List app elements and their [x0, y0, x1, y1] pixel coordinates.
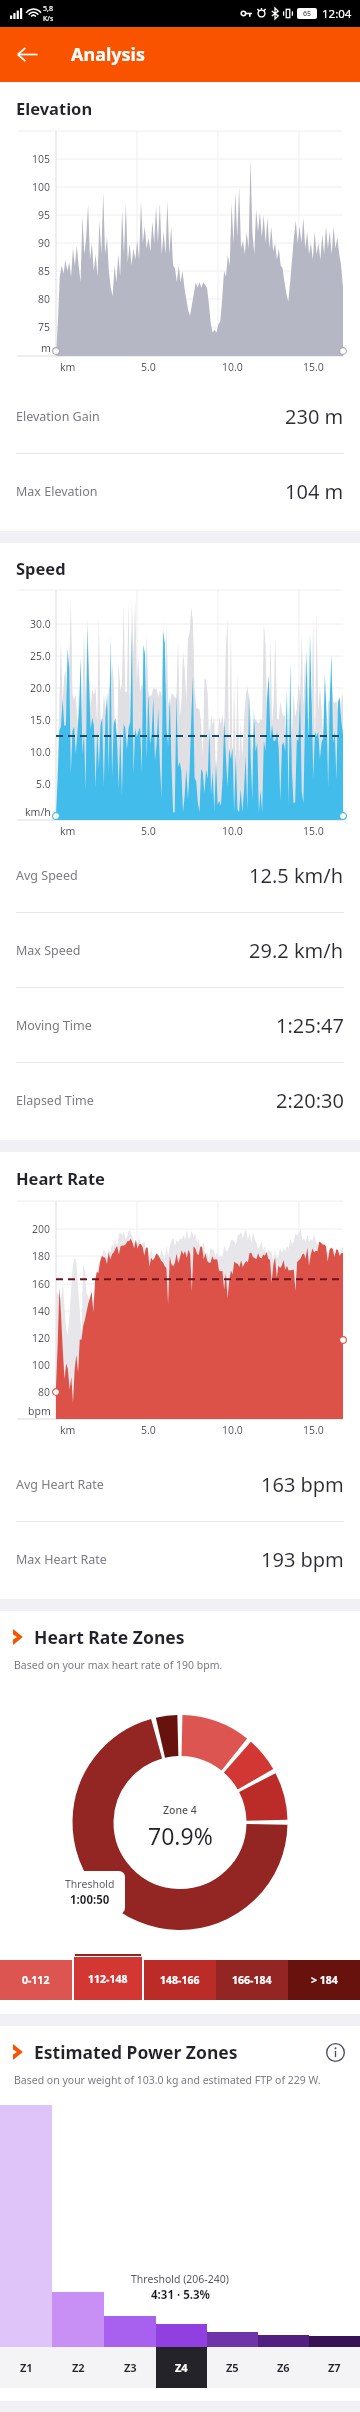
staticText: Heart Rate	[16, 1167, 105, 1189]
staticText: 200	[32, 1222, 51, 1236]
staticText: Estimated Power Zones	[34, 2040, 238, 2064]
button[interactable]: Elevation Gain	[0, 379, 360, 454]
staticText: 30.0	[30, 617, 51, 631]
staticText: Elapsed Time	[16, 1092, 94, 1109]
staticText: 2:20:30	[276, 1087, 344, 1114]
staticText: 1:00:50	[70, 1892, 110, 1908]
staticText: bpm	[28, 1404, 51, 1418]
staticText: 105	[32, 152, 51, 166]
staticText: 148-166	[160, 1973, 200, 1987]
button[interactable]: 200	[0, 1201, 360, 1447]
staticText: 85	[38, 264, 51, 278]
button[interactable]: Z5	[207, 2347, 258, 2388]
staticText: 80	[38, 1385, 51, 1399]
staticText: 90	[38, 236, 51, 250]
staticText: km	[60, 824, 76, 838]
staticText: 10.0	[222, 360, 243, 374]
staticText: 75	[38, 320, 51, 334]
button[interactable]: Z4	[156, 2347, 207, 2388]
staticText: 180	[32, 1249, 51, 1263]
staticText: Z6	[277, 2360, 290, 2375]
staticText: 160	[32, 1277, 51, 1291]
button[interactable]: Max Heart Rate	[0, 1522, 360, 1597]
button[interactable]: > 184	[288, 1960, 360, 2000]
button[interactable]: 0-112	[0, 1960, 72, 2000]
button[interactable]: Avg Heart Rate	[0, 1447, 360, 1522]
staticText: 5,8	[43, 4, 53, 14]
staticText: 120	[32, 1331, 51, 1345]
button[interactable]: Elapsed Time	[0, 1063, 360, 1138]
staticText: Z2	[72, 2360, 85, 2375]
button[interactable]: Moving Time	[0, 988, 360, 1063]
staticText: km/h	[25, 805, 51, 819]
staticText: Max Elevation	[16, 483, 98, 500]
staticText: 0-112	[22, 1973, 50, 1987]
staticText: 65	[303, 9, 312, 19]
staticText: 5.0	[36, 777, 51, 791]
staticText: 104 m	[285, 478, 344, 505]
button[interactable]: Back	[0, 27, 55, 82]
staticText: Z3	[124, 2360, 137, 2375]
staticText: 100	[32, 1358, 51, 1372]
staticText: 15.0	[303, 824, 324, 838]
button[interactable]: Info	[323, 2040, 347, 2064]
staticText: Z4	[175, 2360, 188, 2375]
staticText: 5.0	[141, 360, 156, 374]
staticText: 20.0	[30, 681, 51, 695]
staticText: 95	[38, 208, 51, 222]
staticText: km	[60, 1423, 76, 1437]
staticText: Avg Heart Rate	[16, 1476, 104, 1493]
staticText: 193 bpm	[261, 1546, 344, 1573]
staticText: 25.0	[30, 649, 51, 663]
staticText: Based on your max heart rate of 190 bpm.	[14, 1658, 223, 1672]
staticText: Analysis	[71, 42, 146, 67]
staticText: K/s	[43, 14, 54, 24]
staticText: 15.0	[303, 360, 324, 374]
staticText: Threshold (206-240)	[131, 2272, 229, 2286]
staticText: 10.0	[30, 745, 51, 759]
staticText: Zone 4	[163, 1803, 197, 1817]
staticText: 100	[32, 180, 51, 194]
staticText: 166-184	[232, 1973, 272, 1987]
staticText: 80	[38, 292, 51, 306]
button[interactable]: Z1	[0, 2347, 52, 2388]
button[interactable]: Avg Speed	[0, 838, 360, 913]
button[interactable]: Z3	[104, 2347, 156, 2388]
button[interactable]: Z2	[52, 2347, 104, 2388]
staticText: 29.2 km/h	[249, 937, 344, 964]
staticText: > 184	[311, 1973, 338, 1987]
staticText: 4:31 · 5.3%	[151, 2287, 210, 2303]
staticText: Max Heart Rate	[16, 1551, 107, 1568]
button[interactable]: 112-148	[72, 1954, 144, 2000]
staticText: Moving Time	[16, 1017, 92, 1034]
staticText: 15.0	[30, 713, 51, 727]
staticText: Elevation	[16, 97, 93, 119]
staticText: 70.9%	[148, 1820, 213, 1851]
staticText: Z7	[328, 2360, 341, 2375]
staticText: Z5	[226, 2360, 239, 2375]
button[interactable]: Z6	[258, 2347, 309, 2388]
staticText: 140	[32, 1304, 51, 1318]
button[interactable]: Z7	[309, 2347, 360, 2388]
staticText: Heart Rate Zones	[34, 1625, 185, 1649]
staticText: m	[41, 341, 51, 355]
button[interactable]: 166-184	[216, 1960, 288, 2000]
staticText: 1:25:47	[276, 1012, 344, 1039]
staticText: 10.0	[222, 824, 243, 838]
staticText: Based on your weight of 103.0 kg and est…	[14, 2073, 321, 2087]
staticText: Threshold	[65, 1877, 115, 1891]
staticText: Avg Speed	[16, 867, 78, 884]
button[interactable]: 105	[0, 131, 360, 379]
button[interactable]: 30.0	[0, 590, 360, 838]
staticText: 230 m	[285, 403, 344, 430]
staticText: 15.0	[303, 1423, 324, 1437]
staticText: 12.5 km/h	[249, 862, 344, 889]
staticText: km	[60, 360, 76, 374]
button[interactable]: Max Elevation	[0, 454, 360, 529]
button[interactable]: Max Speed	[0, 913, 360, 988]
staticText: Elevation Gain	[16, 408, 100, 425]
staticText: 10.0	[222, 1423, 243, 1437]
staticText: Max Speed	[16, 942, 81, 959]
staticText: 5.0	[141, 824, 156, 838]
button[interactable]: 148-166	[144, 1960, 216, 2000]
